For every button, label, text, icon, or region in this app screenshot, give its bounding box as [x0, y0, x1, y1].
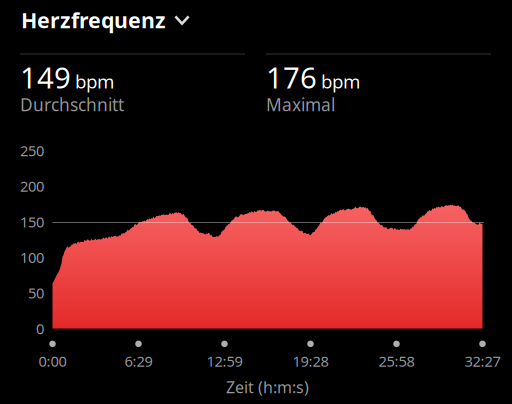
- staticText: 176: [266, 57, 317, 96]
- staticText: 50: [28, 283, 44, 303]
- staticText: 150: [20, 212, 44, 231]
- staticText: Maximal: [266, 93, 335, 116]
- staticText: 0: [36, 319, 44, 338]
- staticText: 6:29: [124, 351, 152, 371]
- staticText: Zeit (h:m:s): [226, 376, 309, 398]
- staticText: Durchschnitt: [20, 93, 124, 116]
- staticText: 19:28: [292, 351, 328, 371]
- staticText: 149: [20, 57, 71, 96]
- staticText: bpm: [321, 69, 360, 93]
- staticText: 32:27: [464, 351, 500, 371]
- staticText: 25:58: [378, 351, 414, 371]
- button[interactable]: Herzfrequenz: [21, 6, 221, 34]
- staticText: 0:00: [38, 351, 66, 371]
- staticText: bpm: [75, 69, 114, 93]
- staticText: 12:59: [206, 351, 242, 371]
- staticText: 250: [20, 141, 44, 160]
- staticText: 100: [20, 248, 44, 267]
- staticText: Herzfrequenz: [21, 6, 166, 34]
- staticText: 200: [20, 176, 44, 196]
